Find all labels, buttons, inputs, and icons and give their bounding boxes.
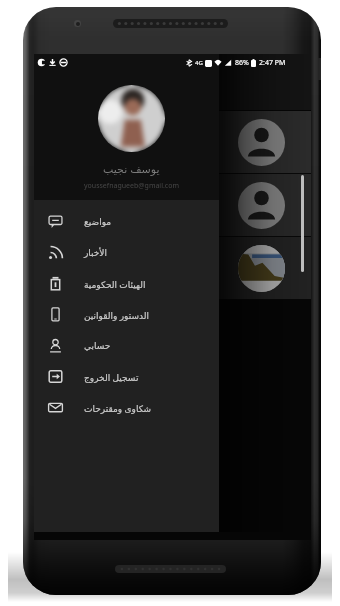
button[interactable]: شكاوى ومقترحات <box>34 392 219 423</box>
staticText: شكاوى ومقترحات <box>84 402 152 414</box>
button[interactable]: حسابي <box>34 330 219 361</box>
button[interactable]: الأخبار <box>34 237 219 268</box>
button[interactable]: تسجيل الخروج <box>34 361 219 392</box>
button[interactable] <box>34 237 311 299</box>
staticText: مواضيع <box>84 217 112 227</box>
button[interactable] <box>34 174 311 236</box>
staticText: تسجيل الخروج <box>84 371 139 383</box>
staticText: الأخبار <box>84 248 108 258</box>
button[interactable]: الهيئات الحكومية <box>34 268 219 299</box>
staticText: الهيئات الحكومية <box>84 278 146 290</box>
staticText: 4G <box>195 59 203 67</box>
staticText: يوسف نجيب <box>103 161 160 176</box>
staticText: حسابي <box>84 341 111 351</box>
button[interactable]: مواضيع <box>34 206 219 237</box>
staticText: 2:47 PM <box>259 58 286 68</box>
staticText: youssefnagueeb@gmail.com <box>84 181 179 191</box>
button[interactable] <box>34 111 311 173</box>
staticText: الدستور والقوانين <box>84 309 149 321</box>
staticText: 86% <box>235 58 249 68</box>
button[interactable]: الدستور والقوانين <box>34 299 219 330</box>
